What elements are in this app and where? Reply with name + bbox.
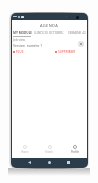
button[interactable]: Home <box>12 143 37 155</box>
staticText: Home <box>21 150 29 154</box>
staticText: Search <box>45 150 54 154</box>
staticText: SUPPRIMER <box>58 50 76 54</box>
staticText: MY MODULE <box>13 31 33 35</box>
button[interactable]: Profile <box>62 143 87 155</box>
button[interactable]: SUPPRIMER <box>55 50 76 54</box>
button[interactable]: AGENDA <box>12 20 87 30</box>
staticText: Profile <box>71 150 79 154</box>
other: Home <box>48 161 51 164</box>
staticText: AGENDA <box>40 23 59 28</box>
button[interactable]: PLUS <box>13 50 24 54</box>
button[interactable]: Options <box>79 42 83 46</box>
staticText: LUNDI 20 OCTOBRE 2017 <box>34 31 64 35</box>
staticText: SEMAINE 42 <box>68 31 86 35</box>
button[interactable]: Search <box>37 143 62 155</box>
staticText: Job view <box>13 38 25 42</box>
staticText: Version numéro 1 <box>13 43 43 48</box>
other: Back <box>28 161 31 164</box>
staticText: PLUS <box>16 50 24 54</box>
